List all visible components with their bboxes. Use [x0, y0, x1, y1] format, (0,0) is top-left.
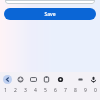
button[interactable]: 7	[60, 84, 70, 96]
button[interactable]: Save	[4, 8, 96, 20]
staticText: 3	[24, 87, 27, 94]
staticText: 6	[54, 87, 57, 94]
button[interactable]: 3	[20, 84, 30, 96]
staticText: 7	[64, 87, 67, 94]
button[interactable]: Text editing	[76, 75, 85, 84]
button[interactable]: 5	[40, 84, 50, 96]
button[interactable]: 1	[0, 84, 10, 96]
button[interactable]: 2	[10, 84, 20, 96]
button[interactable]: Voice input	[89, 75, 98, 84]
staticText: 2	[14, 87, 17, 94]
staticText: 4	[34, 87, 37, 94]
button[interactable]: 9	[80, 84, 90, 96]
button[interactable]: Clipboard	[42, 75, 51, 84]
button[interactable]: Expand toolbar	[3, 75, 12, 84]
staticText: 5	[44, 87, 47, 94]
button[interactable]: GIF	[29, 75, 38, 84]
staticText: 0	[94, 87, 97, 94]
button[interactable]: 0	[90, 84, 100, 96]
button[interactable]: 4	[30, 84, 40, 96]
button[interactable]: Settings	[56, 75, 65, 84]
staticText: 9	[84, 87, 87, 94]
button[interactable]: 8	[70, 84, 80, 96]
staticText: 1	[4, 87, 7, 94]
staticText: 8	[74, 87, 77, 94]
button[interactable]: Stickers	[16, 75, 25, 84]
staticText: Save	[44, 11, 56, 18]
button[interactable]: 6	[50, 84, 60, 96]
